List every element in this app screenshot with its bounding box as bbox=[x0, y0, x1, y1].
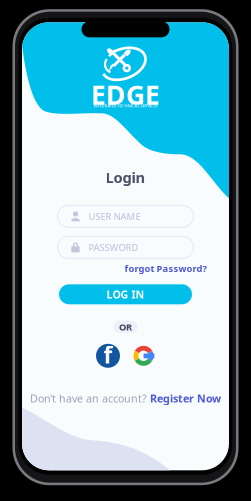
button[interactable]: Sign in with Facebook bbox=[96, 344, 120, 368]
staticText: LOG IN bbox=[106, 287, 144, 301]
staticText: forgot Password? bbox=[124, 262, 206, 274]
staticText: Don't have an account? bbox=[30, 391, 147, 405]
button[interactable]: Sign in with Google bbox=[131, 343, 156, 368]
button[interactable]: LOG IN bbox=[59, 284, 192, 304]
staticText: USER NAME bbox=[88, 210, 140, 222]
staticText: f bbox=[103, 340, 112, 370]
button[interactable]: forgot Password? bbox=[124, 262, 206, 274]
staticText: Register Now bbox=[150, 391, 221, 405]
staticText: OR bbox=[119, 321, 132, 333]
staticText: INTEGRATED TECHNICAL SERVICES bbox=[93, 103, 157, 108]
staticText: PASSWORD bbox=[88, 241, 138, 253]
staticText: Login bbox=[105, 168, 145, 187]
button[interactable]: Register Now bbox=[150, 391, 221, 405]
staticText: EDGE bbox=[91, 77, 160, 112]
